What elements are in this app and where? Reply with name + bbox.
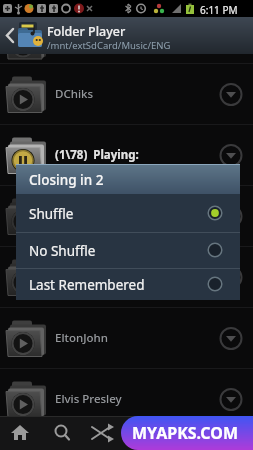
staticText: Last Remembered xyxy=(29,276,145,294)
button[interactable]: (1\78) Playing: xyxy=(0,125,253,186)
button[interactable] xyxy=(6,419,34,447)
staticText: Elvis Presley xyxy=(55,391,122,407)
button[interactable] xyxy=(88,419,116,447)
button[interactable]: MYAPKS.COM xyxy=(121,416,253,450)
staticText: (1\78) Playing: xyxy=(55,147,139,163)
staticText: DChiks xyxy=(55,86,94,102)
button[interactable] xyxy=(0,186,253,247)
staticText: Closing in 2 xyxy=(29,171,104,189)
staticText: Folder Player xyxy=(47,23,126,40)
staticText: No Shuffle xyxy=(29,242,96,260)
button[interactable] xyxy=(16,268,240,300)
staticText: /mnt/extSdCard/Music/ENG xyxy=(47,39,171,52)
button[interactable]: DChiks xyxy=(0,64,253,125)
staticText: EltonJohn xyxy=(55,330,108,346)
staticText: Shuffle xyxy=(29,205,74,223)
button[interactable] xyxy=(48,419,76,447)
staticText: 6:11 PM xyxy=(200,3,238,17)
button[interactable] xyxy=(16,194,240,232)
button[interactable] xyxy=(0,247,253,308)
button[interactable]: Elvis Presley xyxy=(0,369,253,430)
button[interactable] xyxy=(16,232,240,268)
button[interactable]: Folder Player xyxy=(0,17,253,54)
staticText: MYAPKS.COM xyxy=(132,422,238,444)
button[interactable]: EltonJohn xyxy=(0,308,253,369)
